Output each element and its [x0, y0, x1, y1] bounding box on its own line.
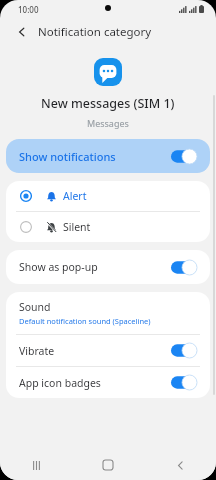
button[interactable]: Vibrate [6, 335, 210, 366]
staticText: App icon badges [19, 376, 171, 390]
button[interactable]: Recent apps [23, 452, 49, 478]
button[interactable]: Show as pop-up [6, 250, 210, 284]
button[interactable]: Show notifications [6, 139, 210, 173]
button[interactable]: Back [12, 22, 32, 42]
staticText: Alert [63, 189, 87, 203]
staticText: Default notification sound (Spaceline) [19, 316, 151, 326]
button[interactable]: Alert [6, 181, 210, 211]
staticText: Sound [19, 300, 51, 314]
button[interactable]: Back [167, 452, 193, 478]
button[interactable]: App icon badges [6, 367, 210, 398]
staticText: Show notifications [19, 149, 171, 164]
staticText: Silent [63, 220, 91, 234]
button[interactable]: Sound [6, 292, 210, 334]
staticText: Notification category [38, 24, 152, 40]
staticText: 10:00 [18, 4, 39, 15]
button[interactable]: Home [95, 452, 121, 478]
staticText: Show as pop-up [19, 260, 171, 274]
button[interactable]: Silent [6, 212, 210, 242]
staticText: Messages [87, 117, 129, 129]
staticText: Vibrate [19, 344, 171, 358]
staticText: New messages (SIM 1) [41, 95, 175, 112]
